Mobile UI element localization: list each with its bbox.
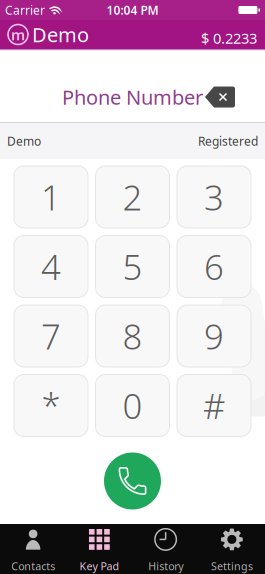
staticText: Demo [32, 21, 89, 48]
staticText: 0 [122, 382, 142, 428]
button[interactable]: * [14, 374, 88, 436]
button[interactable]: 8 [95, 305, 169, 367]
staticText: 3 [204, 174, 224, 220]
button[interactable]: Key Pad [66, 524, 132, 574]
button[interactable]: 1 [14, 166, 88, 228]
staticText: # [203, 382, 225, 428]
staticText: Carrier [5, 2, 45, 18]
button[interactable]: 5 [95, 235, 169, 297]
staticText: Phone Number [62, 84, 203, 110]
staticText: Key Pad [79, 559, 119, 573]
staticText: $ 0.2233 [201, 28, 257, 48]
staticText: 7 [41, 313, 61, 359]
button[interactable]: 4 [14, 235, 88, 297]
button[interactable]: # [177, 374, 251, 436]
staticText: History [148, 559, 183, 573]
staticText: Registered [198, 133, 258, 149]
staticText: 1 [41, 174, 61, 220]
staticText: Demo [7, 133, 41, 149]
staticText: Settings [211, 559, 253, 573]
staticText: 9 [204, 313, 224, 359]
staticText: 4 [41, 243, 61, 289]
button[interactable]: Contacts [0, 524, 66, 574]
button[interactable]: Call [102, 450, 163, 511]
button[interactable]: 3 [177, 166, 251, 228]
button[interactable]: History [132, 524, 199, 574]
button[interactable]: 0 [95, 374, 169, 436]
staticText: 10:04 PM [106, 2, 158, 18]
staticText: 8 [122, 313, 142, 359]
button[interactable]: 7 [14, 305, 88, 367]
button[interactable]: Delete [205, 86, 235, 107]
button[interactable]: Settings [199, 524, 265, 574]
staticText: * [41, 382, 60, 428]
staticText: 5 [122, 243, 142, 289]
staticText: 6 [204, 243, 224, 289]
button[interactable]: 9 [177, 305, 251, 367]
staticText: Contacts [11, 559, 55, 573]
staticText: m [11, 25, 25, 44]
button[interactable]: 6 [177, 235, 251, 297]
staticText: 2 [122, 174, 142, 220]
button[interactable]: 2 [95, 166, 169, 228]
